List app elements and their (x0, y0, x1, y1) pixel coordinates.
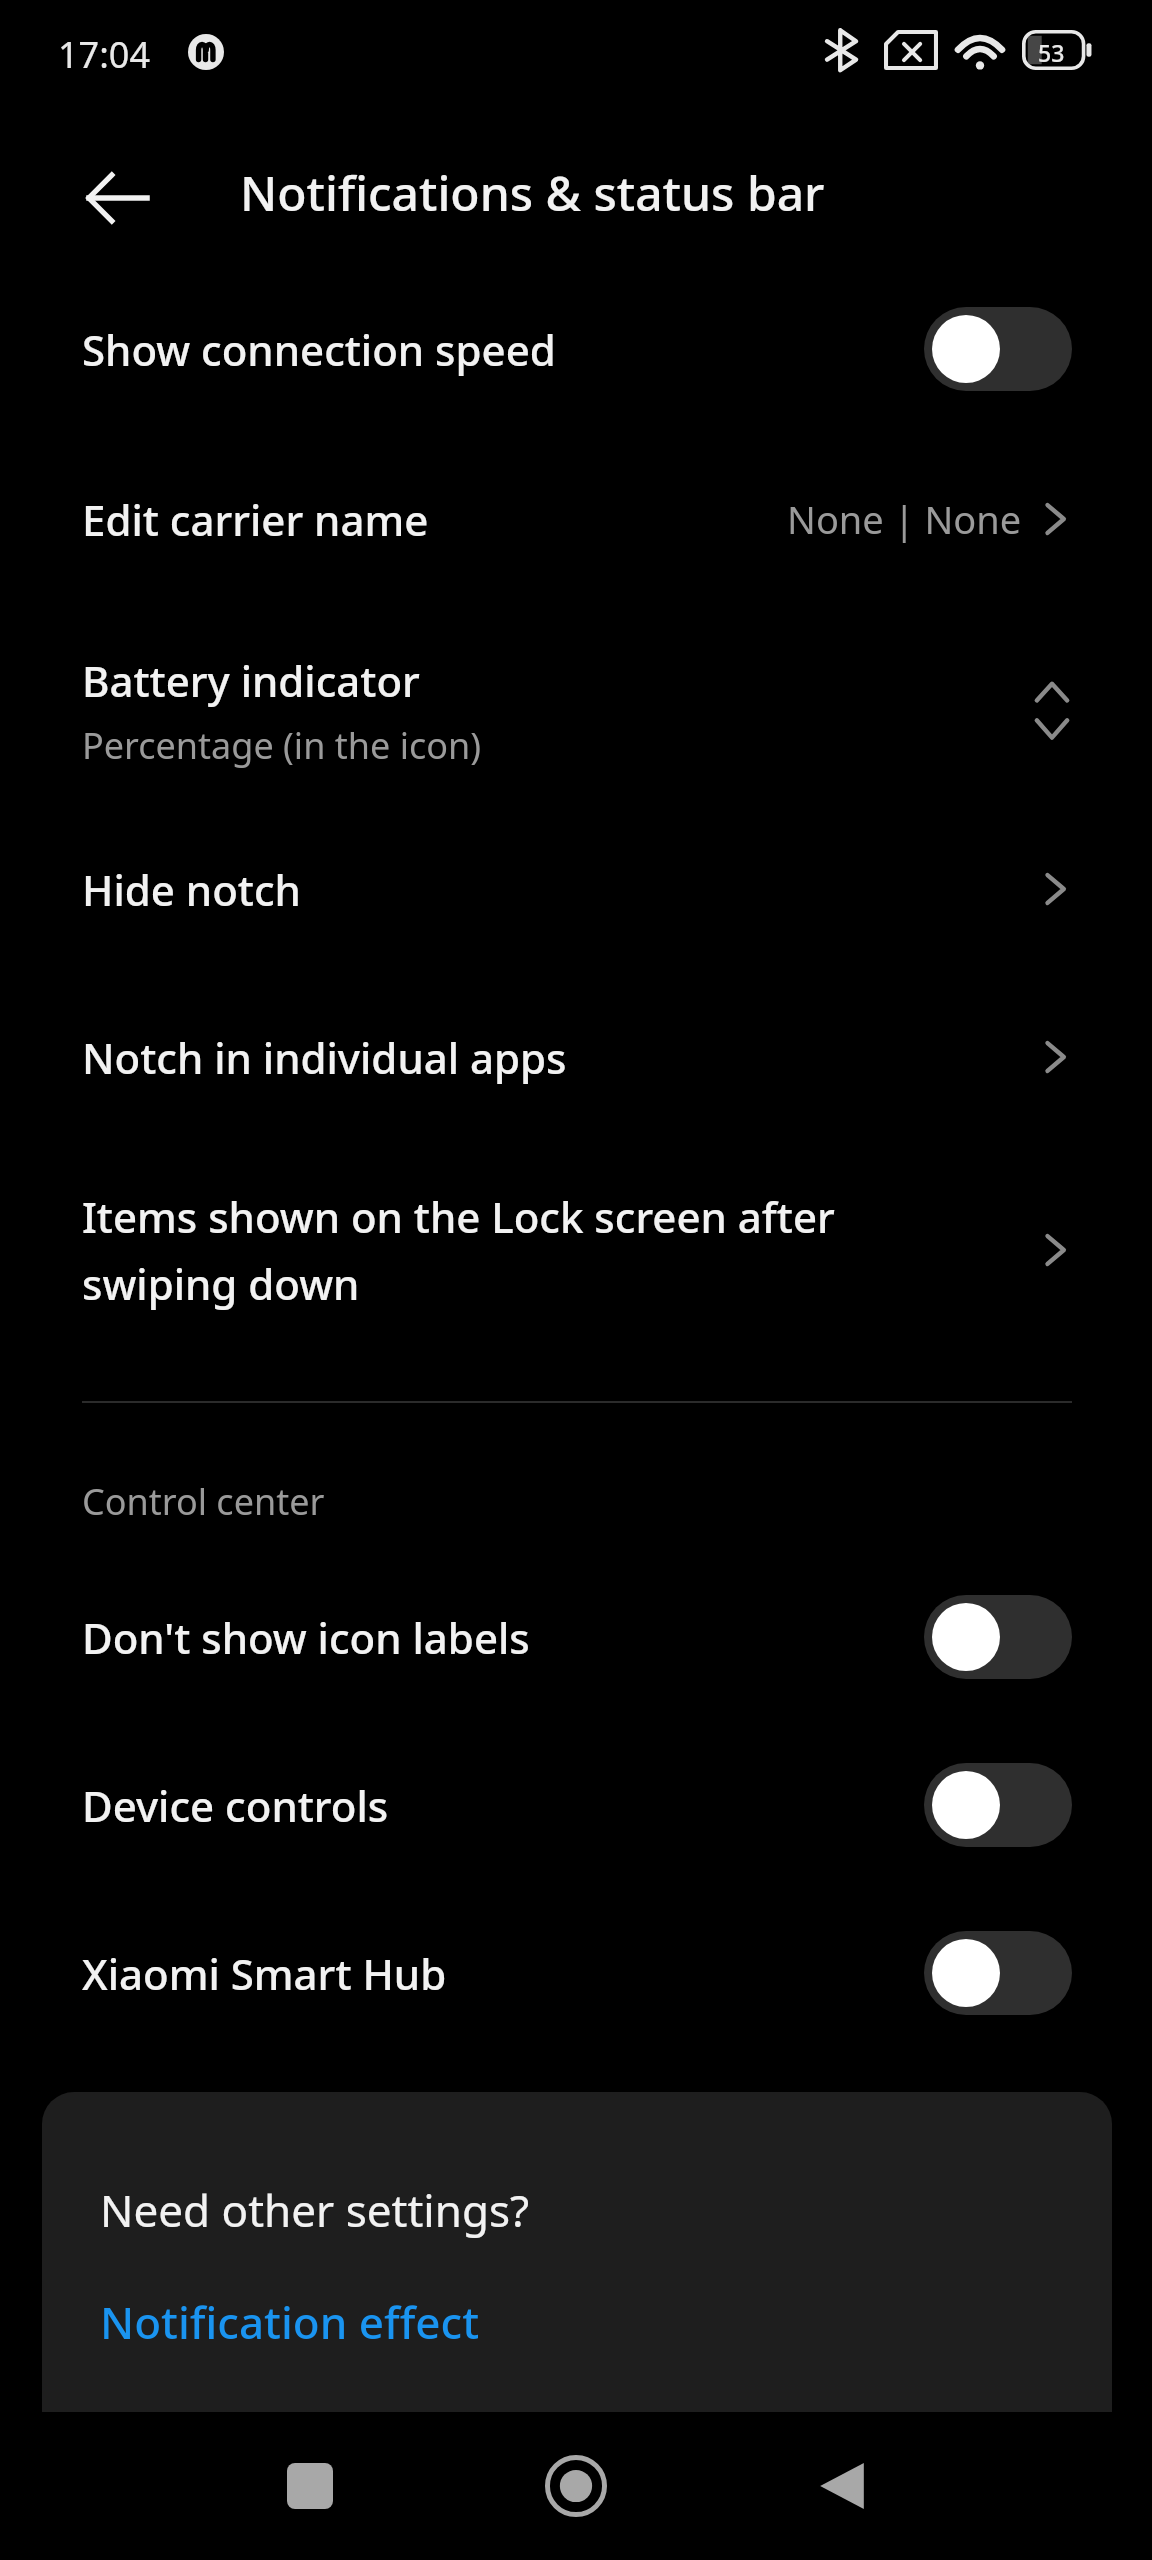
staticText: Hide notch (82, 861, 1038, 918)
button[interactable]: Back (62, 142, 174, 254)
staticText: 17:04 (58, 30, 151, 79)
button[interactable]: Toggle (924, 307, 1072, 391)
staticText: Percentage (in the icon) (82, 721, 482, 770)
button[interactable]: Recent apps (266, 2442, 354, 2530)
button[interactable]: Xiaomi Smart Hub (0, 1914, 1152, 2032)
button[interactable]: Battery indicator (0, 628, 1152, 793)
staticText: Battery indicator (82, 652, 420, 709)
button[interactable]: Device controls (0, 1746, 1152, 1864)
button[interactable]: Home (532, 2442, 620, 2530)
staticText: Notification effect (100, 2292, 480, 2352)
button[interactable]: Toggle (924, 1595, 1072, 1679)
staticText: 53 (1038, 37, 1065, 68)
staticText: Don't show icon labels (82, 1609, 924, 1666)
staticText: Notch in individual apps (82, 1029, 1038, 1086)
button[interactable]: Toggle (924, 1931, 1072, 2015)
staticText: Show connection speed (82, 321, 924, 378)
button[interactable]: Toggle (924, 1763, 1072, 1847)
button[interactable]: Edit carrier name (0, 460, 1152, 578)
staticText: Notifications & status bar (240, 160, 825, 225)
button[interactable]: Notification effect (100, 2292, 480, 2352)
staticText: Control center (82, 1477, 325, 1526)
button[interactable]: Don't show icon labels (0, 1578, 1152, 1696)
staticText: swiping down (82, 1255, 360, 1312)
button[interactable]: Items shown on the Lock screen after (0, 1160, 1152, 1340)
button[interactable]: Hide notch (0, 830, 1152, 948)
staticText: Xiaomi Smart Hub (82, 1945, 924, 2002)
button[interactable]: Notch in individual apps (0, 998, 1152, 1116)
staticText: Items shown on the Lock screen after (82, 1188, 835, 1245)
staticText: Device controls (82, 1777, 924, 1834)
button[interactable]: Show connection speed (0, 290, 1152, 408)
staticText: Edit carrier name (82, 491, 787, 548)
staticText: Need other settings? (100, 2180, 530, 2240)
button[interactable]: Back (798, 2442, 886, 2530)
staticText: None | None (787, 493, 1022, 545)
